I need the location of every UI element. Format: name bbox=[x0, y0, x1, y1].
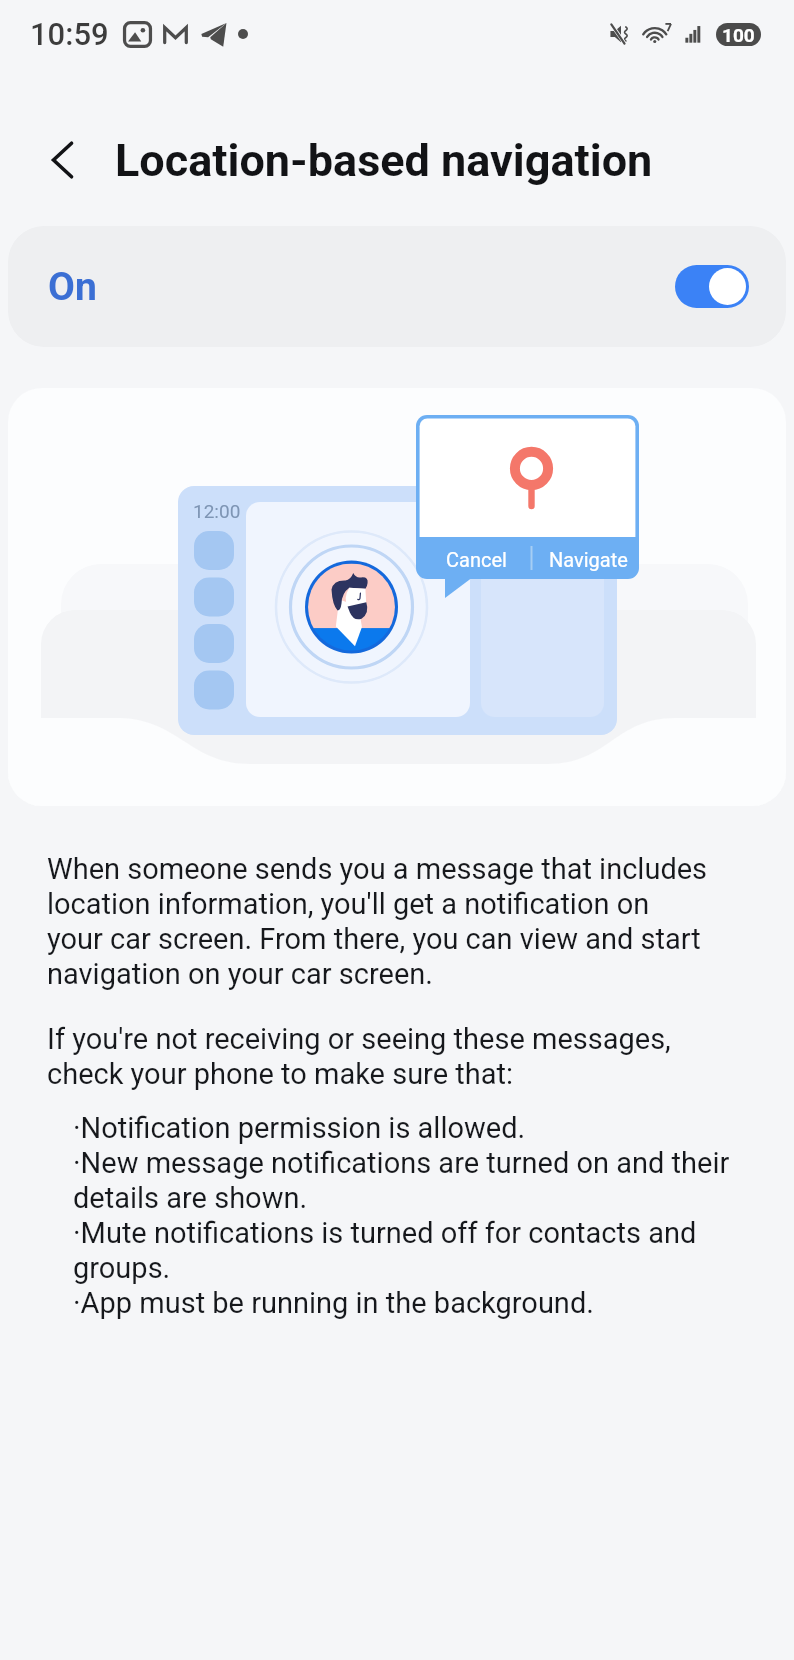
button[interactable]: On bbox=[8, 226, 786, 347]
staticText: 100 bbox=[722, 24, 755, 46]
staticText: Cancel bbox=[446, 548, 507, 571]
staticText: On bbox=[48, 264, 97, 310]
staticText: Location-based navigation bbox=[115, 134, 653, 187]
staticText: 10:59 bbox=[30, 16, 109, 52]
staticText: Navigate bbox=[549, 548, 628, 571]
button[interactable]: Location-based navigation on bbox=[675, 265, 749, 308]
staticText: 12:00 bbox=[193, 500, 241, 522]
button[interactable]: Back bbox=[36, 132, 92, 188]
staticText: If you're not receiving or seeing these … bbox=[47, 1022, 709, 1091]
staticText: ·Notification permission is allowed. ·Ne… bbox=[73, 1111, 735, 1320]
staticText: When someone sends you a message that in… bbox=[47, 852, 709, 991]
